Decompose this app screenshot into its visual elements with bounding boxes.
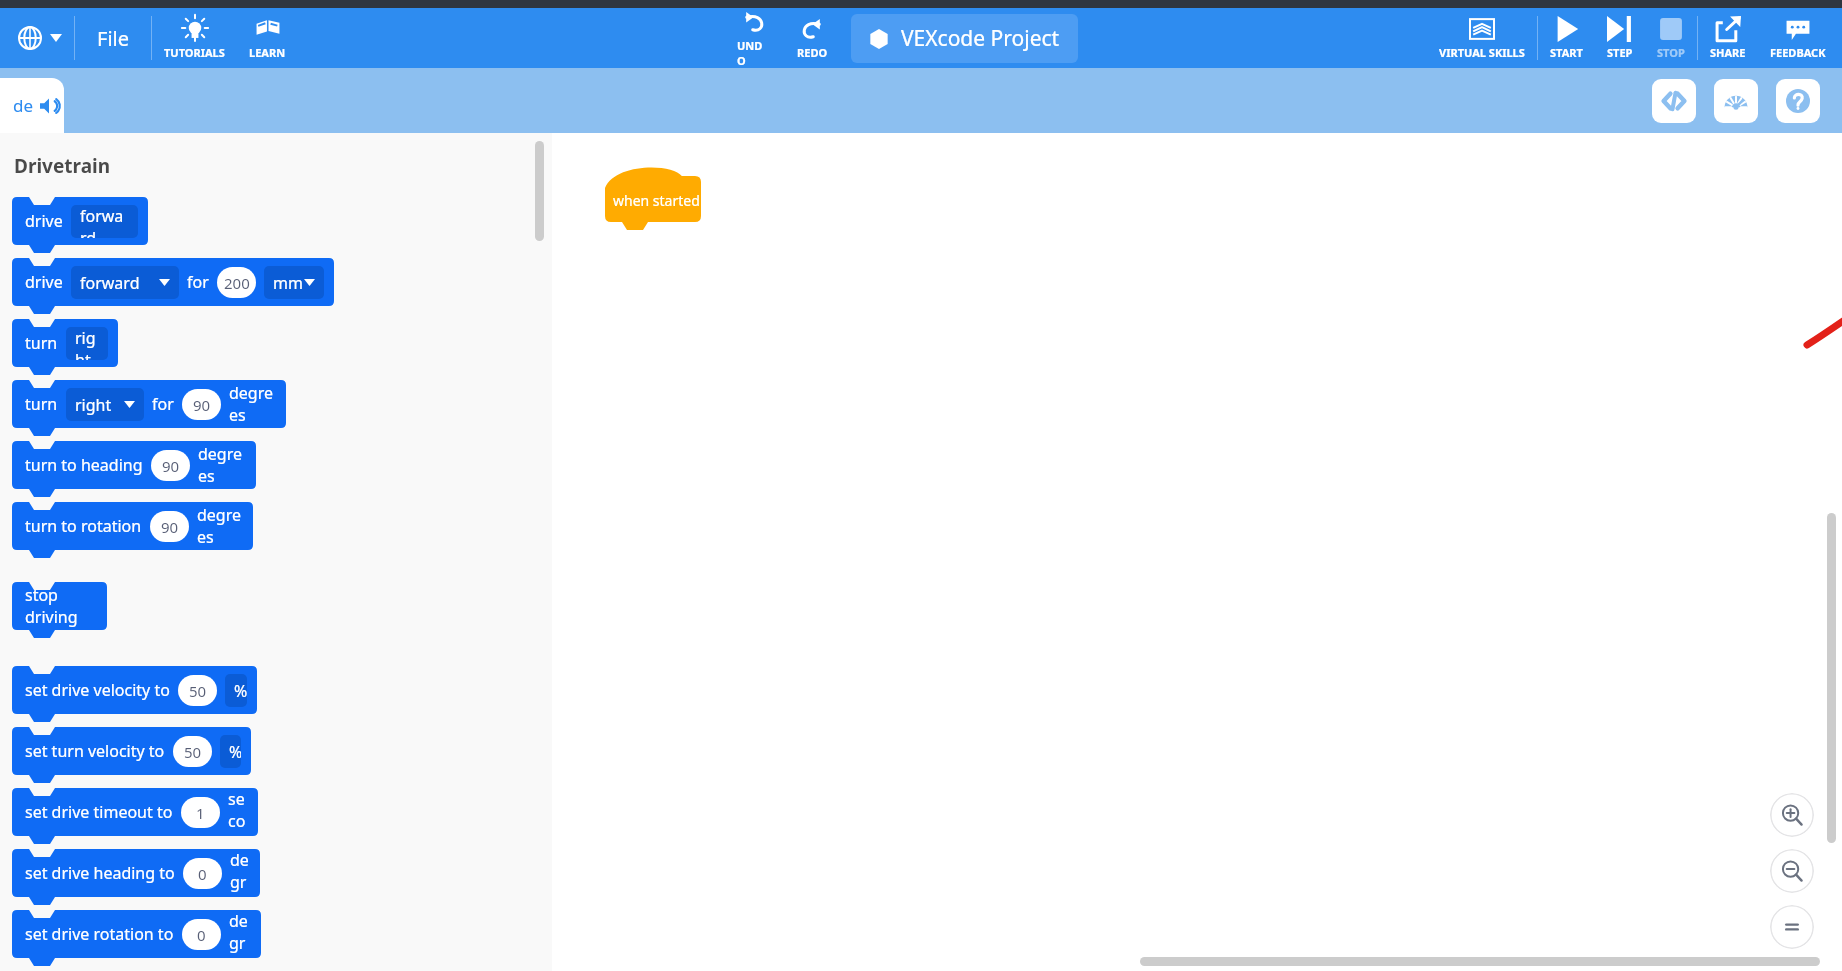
- button[interactable]: STOP: [1645, 8, 1697, 68]
- staticText: degrees: [198, 443, 246, 487]
- button[interactable]: Code view: [1652, 79, 1696, 123]
- staticText: drive: [25, 210, 63, 232]
- staticText: LEARN: [249, 45, 286, 60]
- staticText: forward: [80, 272, 140, 294]
- button[interactable]: VEXcode Project: [851, 14, 1078, 63]
- staticText: VEXcode Project: [901, 24, 1060, 53]
- staticText: FEEDBACK: [1770, 45, 1826, 60]
- staticText: degrees: [197, 504, 243, 548]
- button[interactable]: Language: [6, 8, 74, 68]
- staticText: %: [229, 741, 232, 763]
- staticText: set drive velocity to: [25, 679, 170, 701]
- staticText: 90: [162, 456, 180, 476]
- staticText: UNDO: [737, 38, 771, 68]
- staticText: set drive rotation to: [25, 923, 174, 945]
- staticText: stop driving: [25, 584, 97, 628]
- button[interactable]: set drive velocity to: [25, 666, 247, 714]
- button[interactable]: de: [0, 78, 64, 133]
- staticText: 200: [224, 273, 250, 293]
- staticText: 1: [196, 803, 205, 823]
- button[interactable]: set drive heading to: [25, 849, 250, 897]
- staticText: de: [13, 94, 34, 117]
- staticText: turn: [25, 332, 58, 354]
- staticText: VIRTUAL SKILLS: [1439, 45, 1525, 60]
- button[interactable]: Zoom out: [1770, 849, 1814, 893]
- button[interactable]: set turn velocity to: [25, 727, 241, 775]
- staticText: REDO: [797, 45, 828, 60]
- button[interactable]: File: [75, 8, 151, 68]
- staticText: set drive heading to: [25, 862, 175, 884]
- staticText: turn to heading: [25, 454, 143, 476]
- staticText: degrees: [229, 910, 251, 958]
- staticText: right: [75, 327, 99, 360]
- staticText: Drivetrain: [14, 153, 111, 179]
- button[interactable]: Reset zoom: [1770, 905, 1814, 949]
- button[interactable]: Zoom in: [1770, 793, 1814, 837]
- button[interactable]: LEARN: [237, 8, 298, 68]
- button[interactable]: STEP: [1595, 8, 1645, 68]
- button[interactable]: turn to rotation: [25, 502, 243, 550]
- staticText: 50: [184, 742, 202, 762]
- staticText: mm: [273, 272, 303, 294]
- staticText: degrees: [230, 849, 250, 897]
- staticText: for: [152, 393, 174, 415]
- staticText: 0: [197, 925, 206, 945]
- button[interactable]: drive: [25, 197, 138, 245]
- button[interactable]: set drive timeout to: [25, 788, 248, 836]
- staticText: %: [234, 680, 238, 702]
- button[interactable]: turn: [25, 380, 276, 428]
- button[interactable]: Help: [1776, 79, 1820, 123]
- staticText: START: [1550, 45, 1583, 60]
- staticText: 90: [161, 517, 179, 537]
- staticText: 50: [189, 681, 207, 701]
- staticText: STOP: [1657, 45, 1685, 60]
- staticText: set turn velocity to: [25, 740, 165, 762]
- staticText: when started: [613, 191, 700, 210]
- staticText: STEP: [1607, 45, 1633, 60]
- button[interactable]: TUTORIALS: [152, 8, 237, 68]
- staticText: forward: [80, 205, 129, 238]
- staticText: 0: [198, 864, 207, 884]
- button[interactable]: set drive rotation to: [25, 910, 251, 958]
- staticText: drive: [25, 271, 63, 293]
- button[interactable]: when started: [605, 162, 701, 222]
- staticText: turn to rotation: [25, 515, 142, 537]
- staticText: turn: [25, 393, 58, 415]
- staticText: for: [187, 271, 209, 293]
- staticText: set drive timeout to: [25, 801, 173, 823]
- staticText: degrees: [229, 382, 276, 426]
- button[interactable]: turn: [25, 319, 108, 367]
- button[interactable]: START: [1538, 8, 1595, 68]
- staticText: File: [97, 25, 129, 52]
- button[interactable]: FEEDBACK: [1758, 8, 1838, 68]
- button[interactable]: UNDO: [725, 8, 783, 68]
- button[interactable]: REDO: [783, 8, 841, 68]
- staticText: right: [75, 394, 112, 416]
- staticText: SHARE: [1710, 45, 1746, 60]
- staticText: TUTORIALS: [164, 45, 225, 60]
- button[interactable]: Monitor: [1714, 79, 1758, 123]
- button[interactable]: VIRTUAL SKILLS: [1427, 8, 1537, 68]
- button[interactable]: SHARE: [1698, 8, 1758, 68]
- button[interactable]: drive: [25, 258, 324, 306]
- button[interactable]: turn to heading: [25, 441, 246, 489]
- button[interactable]: stop driving: [25, 582, 97, 630]
- staticText: seconds: [228, 788, 248, 836]
- staticText: 90: [193, 395, 211, 415]
